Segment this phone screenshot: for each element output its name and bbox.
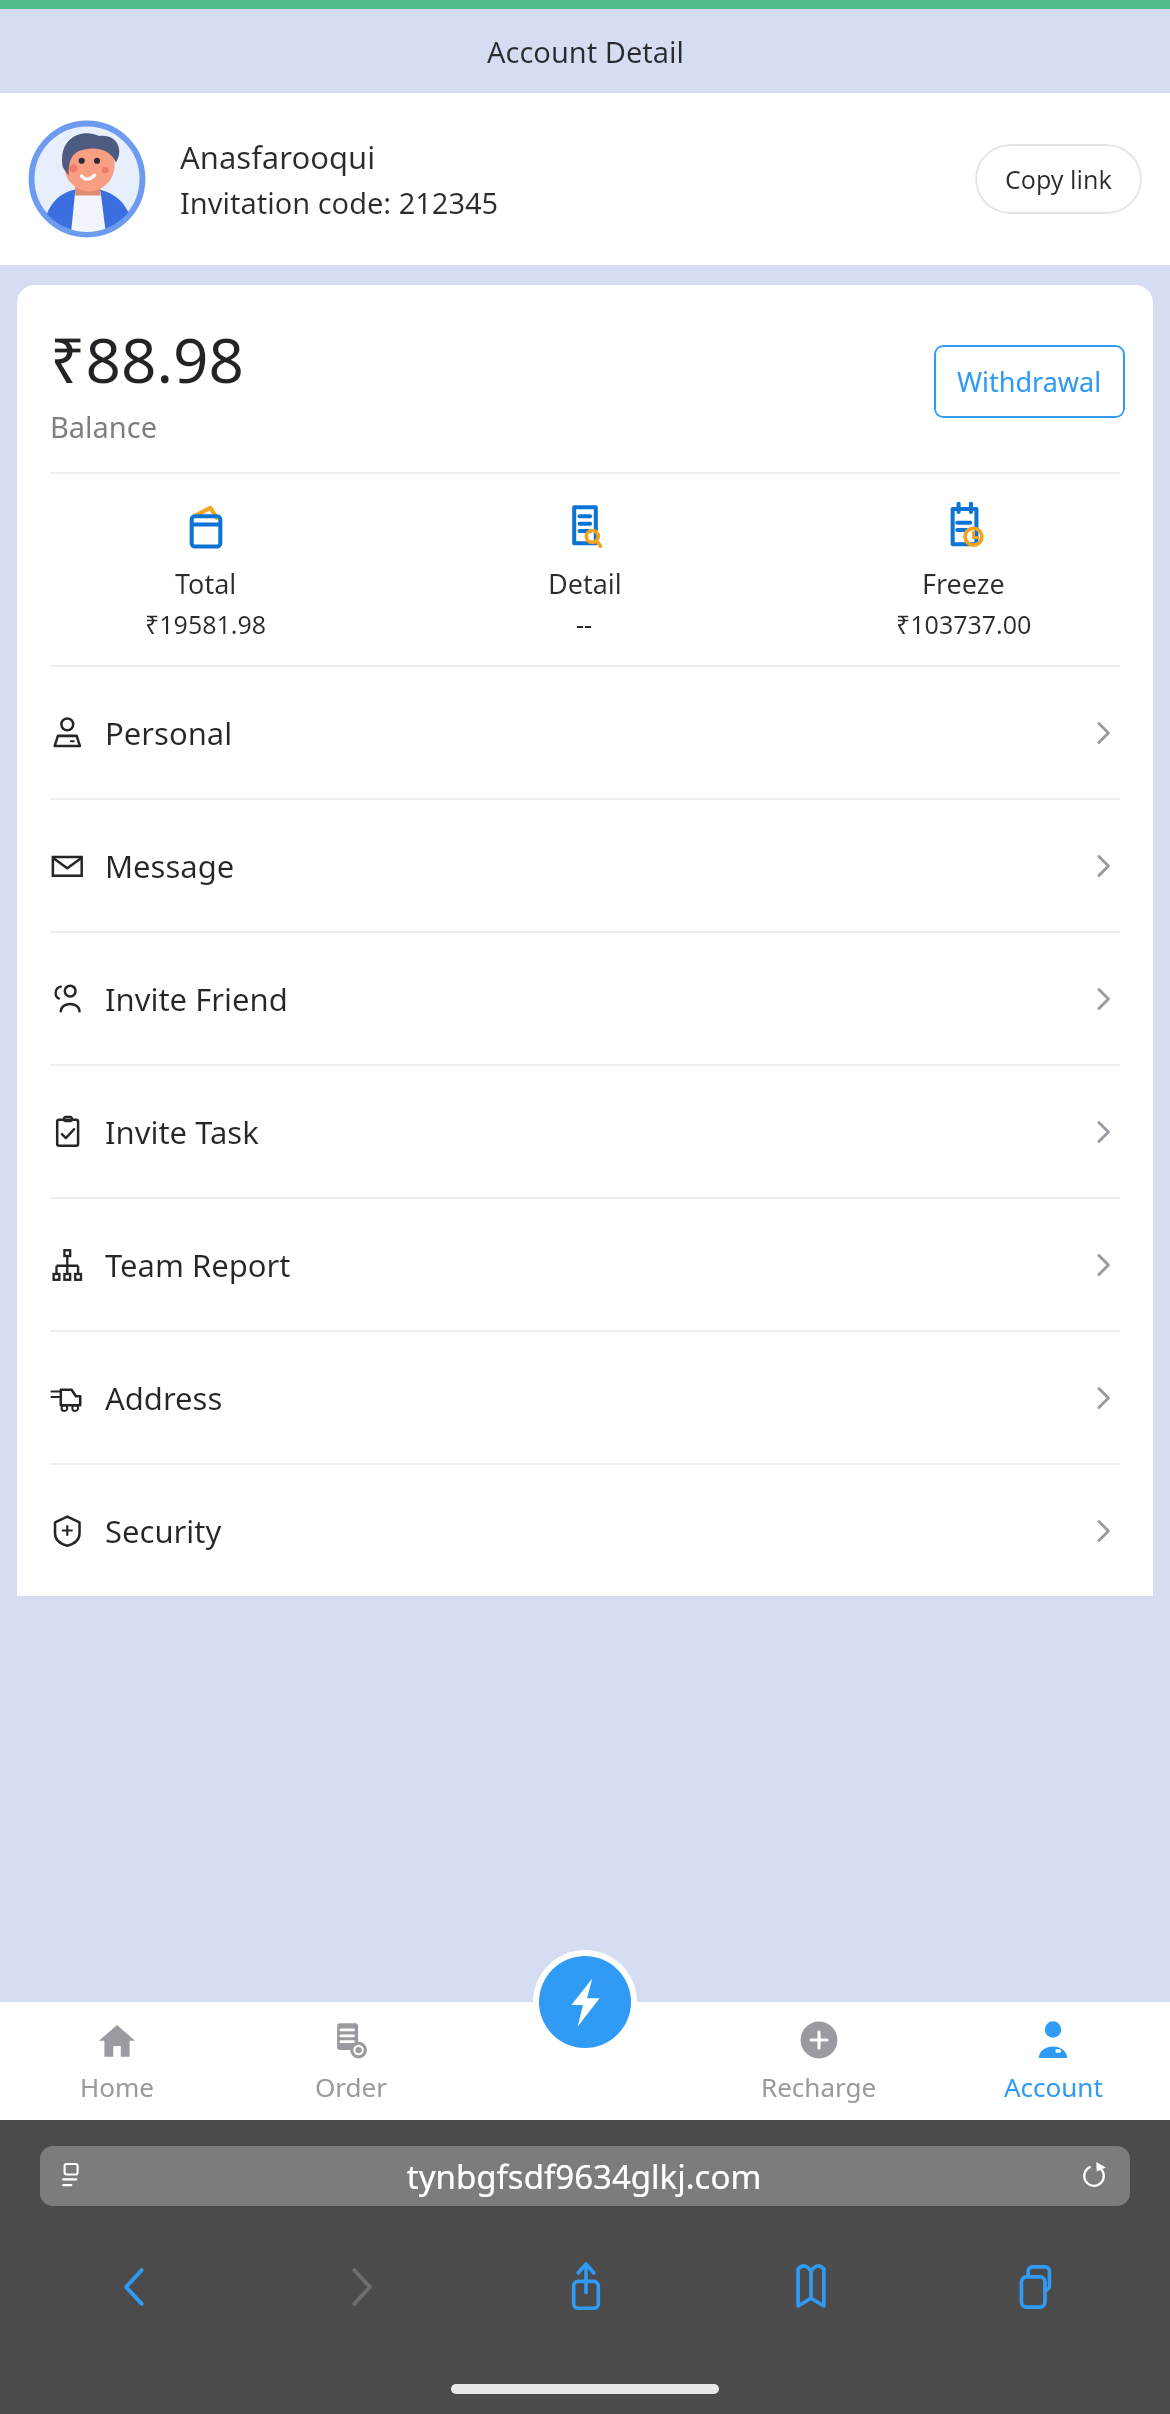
staticText: tynbgfsdf9634glkj.com: [88, 2154, 1080, 2199]
button[interactable]: Invite Friend: [17, 933, 1153, 1064]
other: Reader view: [62, 2163, 88, 2189]
button[interactable]: Order: [234, 2002, 468, 2120]
other: Reload: [1080, 2162, 1108, 2190]
button[interactable]: Address: [17, 1332, 1153, 1463]
staticText: Withdrawal: [957, 363, 1102, 400]
button[interactable]: Personal: [17, 667, 1153, 798]
button[interactable]: Bookmarks: [698, 2242, 923, 2332]
button[interactable]: Detail: [395, 500, 774, 641]
staticText: ₹103737.00: [896, 607, 1032, 641]
staticText: Recharge: [761, 2069, 877, 2104]
button[interactable]: Message: [17, 800, 1153, 931]
staticText: Personal: [105, 712, 233, 754]
staticText: --: [576, 607, 593, 641]
staticText: Balance: [50, 407, 158, 446]
button[interactable]: Freeze: [774, 500, 1153, 641]
button[interactable]: Reader view: [40, 2146, 1130, 2206]
staticText: ₹88.98: [50, 317, 244, 401]
staticText: Security: [105, 1510, 222, 1552]
staticText: Invitation code: 212345: [180, 183, 499, 222]
button[interactable]: Team Report: [17, 1199, 1153, 1330]
staticText: Invite Friend: [105, 978, 288, 1020]
staticText: Order: [315, 2069, 387, 2104]
staticText: Message: [105, 845, 235, 887]
staticText: Detail: [548, 565, 622, 602]
staticText: Account Detail: [487, 32, 684, 71]
button[interactable]: Home: [0, 2002, 234, 2120]
staticText: Freeze: [922, 565, 1005, 602]
button[interactable]: Recharge: [702, 2002, 936, 2120]
button[interactable]: Total: [17, 500, 395, 641]
staticText: Total: [175, 565, 237, 602]
button[interactable]: Invite Task: [17, 1066, 1153, 1197]
staticText: Anasfarooqui: [180, 136, 376, 178]
staticText: ₹19581.98: [145, 607, 267, 641]
button[interactable]: Share: [473, 2242, 698, 2332]
staticText: Copy link: [1005, 162, 1112, 196]
staticText: Invite Task: [105, 1111, 259, 1153]
button[interactable]: Security: [17, 1465, 1153, 1596]
button[interactable]: Copy link: [975, 144, 1142, 214]
staticText: Account: [1004, 2069, 1103, 2104]
staticText: Address: [105, 1377, 223, 1419]
button[interactable]: Withdrawal: [934, 345, 1125, 418]
staticText: Home: [80, 2069, 154, 2104]
button[interactable]: Tabs: [923, 2242, 1148, 2332]
button[interactable]: Back: [22, 2242, 248, 2332]
button[interactable]: Forward: [248, 2242, 473, 2332]
staticText: Team Report: [105, 1244, 291, 1286]
button[interactable]: Quick action: [539, 1956, 631, 2048]
button[interactable]: Account: [936, 2002, 1170, 2120]
